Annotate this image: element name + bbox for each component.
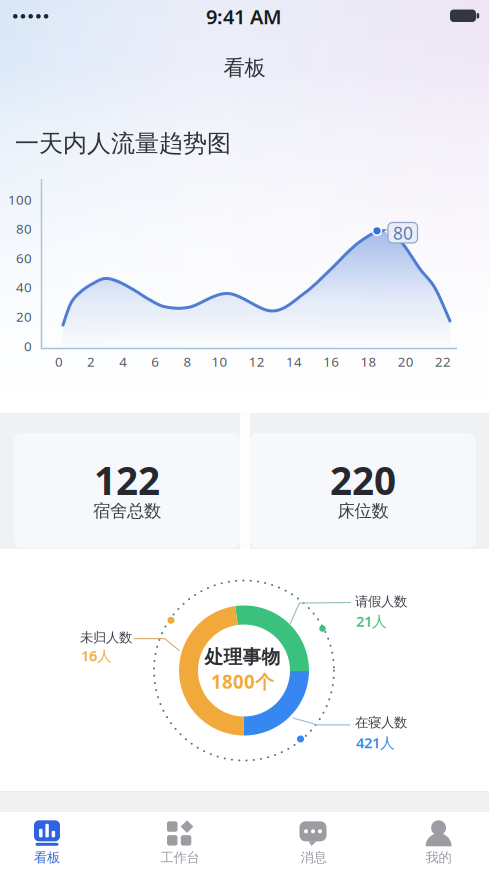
staticText: 22 [435, 353, 451, 370]
staticText: 40 [16, 278, 32, 296]
staticText: 在寝人数 [355, 714, 407, 731]
staticText: 0 [55, 353, 63, 370]
button[interactable]: 看板 [7, 817, 87, 869]
button[interactable]: 消息 [273, 817, 353, 869]
staticText: 工作台 [160, 849, 199, 866]
staticText: 60 [16, 249, 32, 267]
staticText: 18 [361, 353, 377, 370]
staticText: 未归人数 [80, 629, 132, 646]
staticText: 9:41 AM [206, 3, 282, 30]
staticText: 220 [330, 454, 396, 506]
staticText: 宿舍总数 [93, 500, 161, 522]
staticText: 21人 [356, 611, 387, 631]
staticText: 20 [16, 308, 32, 325]
staticText: 8 [183, 353, 191, 370]
button[interactable]: 工作台 [140, 817, 220, 869]
staticText: 看板 [223, 55, 265, 81]
staticText: 421人 [356, 733, 395, 752]
staticText: 请假人数 [355, 593, 407, 610]
staticText: 4 [119, 353, 127, 370]
staticText: 16人 [81, 646, 112, 665]
button[interactable]: 我的 [399, 817, 479, 869]
staticText: 0 [24, 337, 32, 355]
staticText: 1800个 [211, 669, 274, 694]
staticText: 80 [16, 220, 32, 237]
staticText: 看板 [34, 849, 60, 866]
staticText: 12 [249, 353, 265, 370]
staticText: 80 [393, 221, 413, 244]
staticText: 我的 [426, 849, 452, 866]
staticText: 床位数 [337, 500, 388, 522]
staticText: 122 [94, 454, 160, 506]
staticText: 100 [8, 191, 32, 208]
staticText: 2 [87, 353, 95, 370]
staticText: 6 [151, 353, 159, 370]
staticText: 处理事物 [204, 645, 280, 668]
staticText: 10 [212, 353, 228, 370]
staticText: 消息 [300, 849, 326, 866]
staticText: 16 [323, 353, 339, 370]
staticText: 14 [286, 353, 302, 370]
staticText: 20 [398, 353, 414, 370]
staticText: 一天内人流量趋势图 [15, 129, 231, 158]
